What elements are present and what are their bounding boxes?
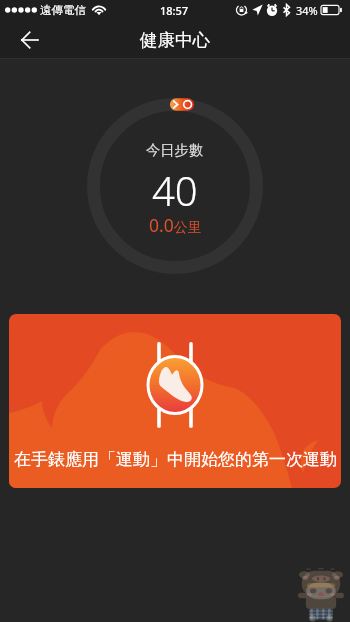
button[interactable]: 在手錶應用「運動」中開始您的第一次運動: [9, 314, 341, 488]
staticText: 0.0公里: [149, 213, 202, 237]
staticText: 健康中心: [140, 29, 210, 51]
staticText: 18:57: [160, 3, 189, 18]
button[interactable]: Back: [0, 20, 58, 59]
staticText: 34%: [296, 3, 318, 18]
staticText: 今日步數: [146, 141, 204, 159]
staticText: 遠傳電信: [40, 3, 86, 17]
staticText: 40: [152, 163, 198, 217]
staticText: 在手錶應用「運動」中開始您的第一次運動: [14, 449, 337, 470]
